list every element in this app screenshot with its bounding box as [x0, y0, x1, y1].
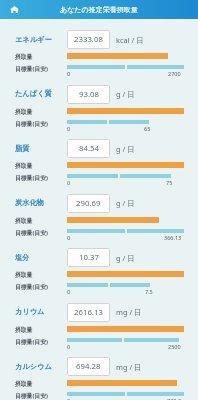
staticText: カルシウム	[15, 362, 52, 371]
staticText: g / 日	[116, 253, 135, 263]
staticText: 0	[67, 397, 71, 400]
staticText: 塩分	[15, 253, 30, 262]
staticText: 0	[67, 70, 71, 77]
staticText: 摂取量	[15, 108, 33, 115]
staticText: たんぱく質	[15, 89, 52, 98]
staticText: 2500	[168, 343, 181, 350]
staticText: 目標量(目安)	[15, 120, 48, 128]
staticText: g / 日	[116, 89, 135, 99]
staticText: 2700	[168, 70, 181, 77]
staticText: 目標量(目安)	[15, 283, 48, 291]
staticText: 0	[67, 288, 71, 295]
staticText: あなたの推定栄養摂取量	[60, 5, 138, 14]
staticText: 摂取量	[15, 217, 33, 224]
staticText: 0	[67, 125, 71, 132]
staticText: カリウム	[15, 307, 45, 316]
staticText: 目標量(目安)	[15, 392, 48, 400]
staticText: エネルギー	[15, 35, 52, 44]
staticText: 目標量(目安)	[15, 174, 48, 182]
staticText: g / 日	[116, 198, 135, 208]
staticText: g / 日	[116, 144, 135, 154]
staticText: 10.37	[79, 252, 99, 263]
staticText: 目標量(目安)	[15, 338, 48, 346]
staticText: 摂取量	[15, 162, 33, 169]
staticText: 694.28	[76, 361, 101, 372]
button[interactable]: Home	[4, 0, 24, 19]
staticText: 65	[144, 125, 151, 132]
staticText: 炭水化物	[15, 198, 44, 207]
staticText: 目標量(目安)	[15, 229, 48, 237]
staticText: 摂取量	[15, 53, 33, 60]
staticText: 摂取量	[15, 380, 33, 387]
staticText: mg / 日	[116, 307, 142, 317]
staticText: 0	[67, 179, 71, 186]
staticText: 84.54	[79, 143, 99, 154]
staticText: 2333.08	[74, 34, 103, 45]
staticText: 目標量(目安)	[15, 65, 48, 73]
staticText: 摂取量	[15, 271, 33, 278]
staticText: 0	[67, 343, 71, 350]
staticText: kcal / 日	[116, 35, 144, 45]
staticText: 739.2	[167, 397, 182, 400]
staticText: 93.08	[79, 89, 99, 100]
staticText: 7.5	[145, 288, 153, 295]
staticText: 摂取量	[15, 326, 33, 333]
staticText: 75	[166, 179, 173, 186]
staticText: 366.13	[164, 234, 182, 241]
staticText: 0	[67, 234, 71, 241]
staticText: mg / 日	[116, 362, 142, 372]
staticText: 脂質	[15, 144, 30, 153]
staticText: 2616.13	[74, 307, 103, 318]
staticText: 290.69	[76, 198, 101, 209]
